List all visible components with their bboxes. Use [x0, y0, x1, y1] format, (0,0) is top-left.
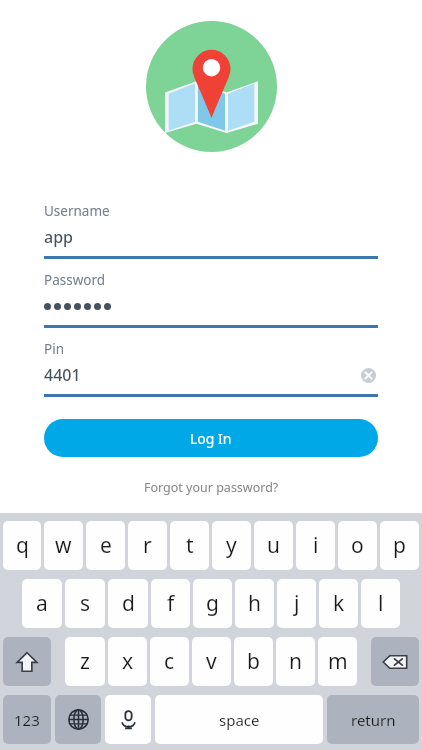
staticText: 123: [14, 710, 40, 730]
button[interactable]: Delete: [371, 637, 419, 686]
staticText: k: [333, 589, 345, 618]
button[interactable]: e: [86, 521, 125, 570]
staticText: v: [206, 647, 217, 676]
staticText: u: [267, 531, 280, 560]
button[interactable]: i: [296, 521, 335, 570]
button[interactable]: a: [22, 579, 62, 628]
staticText: l: [378, 589, 384, 618]
staticText: f: [167, 589, 175, 618]
staticText: g: [206, 589, 219, 618]
staticText: o: [351, 531, 364, 560]
staticText: n: [289, 647, 302, 676]
button[interactable]: Forgot your password?: [138, 473, 285, 502]
button[interactable]: c: [150, 637, 189, 686]
button[interactable]: t: [170, 521, 209, 570]
staticText: e: [100, 531, 112, 560]
button[interactable]: k: [319, 579, 358, 628]
staticText: h: [248, 589, 261, 618]
button[interactable]: Change keyboard language: [55, 695, 101, 744]
button[interactable]: b: [234, 637, 273, 686]
staticText: z: [80, 647, 90, 676]
staticText: y: [226, 531, 237, 560]
button[interactable]: Log In: [44, 419, 378, 457]
staticText: Pin: [44, 340, 64, 358]
button[interactable]: u: [254, 521, 293, 570]
button[interactable]: space: [155, 695, 323, 744]
staticText: a: [36, 589, 48, 618]
staticText: b: [247, 647, 260, 676]
button[interactable]: v: [192, 637, 231, 686]
button[interactable]: h: [235, 579, 274, 628]
button[interactable]: g: [193, 579, 232, 628]
button[interactable]: q: [3, 521, 41, 570]
staticText: s: [80, 589, 91, 618]
button[interactable]: l: [361, 579, 400, 628]
staticText: Password: [44, 271, 106, 289]
button[interactable]: return: [327, 695, 419, 744]
staticText: x: [122, 647, 134, 676]
staticText: w: [55, 531, 72, 560]
staticText: return: [351, 710, 396, 730]
staticText: r: [143, 531, 152, 560]
staticText: j: [294, 589, 300, 618]
button[interactable]: d: [108, 579, 148, 628]
staticText: m: [328, 647, 348, 676]
button[interactable]: s: [65, 579, 105, 628]
button[interactable]: r: [128, 521, 167, 570]
staticText: Forgot your password?: [144, 479, 279, 496]
staticText: Log In: [190, 429, 232, 448]
button[interactable]: w: [44, 521, 83, 570]
staticText: d: [122, 589, 135, 618]
button[interactable]: Shift: [3, 637, 51, 686]
staticText: p: [393, 531, 406, 560]
button[interactable]: p: [380, 521, 419, 570]
button[interactable]: Clear: [358, 365, 378, 385]
staticText: t: [186, 531, 194, 560]
staticText: space: [219, 710, 260, 730]
staticText: 4401: [44, 364, 81, 386]
staticText: app: [44, 226, 73, 248]
button[interactable]: x: [108, 637, 147, 686]
button[interactable]: o: [338, 521, 377, 570]
button[interactable]: z: [65, 637, 105, 686]
button[interactable]: y: [212, 521, 251, 570]
staticText: q: [16, 531, 29, 560]
button[interactable]: 123: [3, 695, 51, 744]
button[interactable]: j: [277, 579, 316, 628]
staticText: c: [164, 647, 175, 676]
button[interactable]: m: [318, 637, 357, 686]
button[interactable]: n: [276, 637, 315, 686]
button[interactable]: Voice input: [105, 695, 151, 744]
staticText: Username: [44, 202, 110, 220]
staticText: i: [313, 531, 319, 560]
button[interactable]: f: [151, 579, 190, 628]
